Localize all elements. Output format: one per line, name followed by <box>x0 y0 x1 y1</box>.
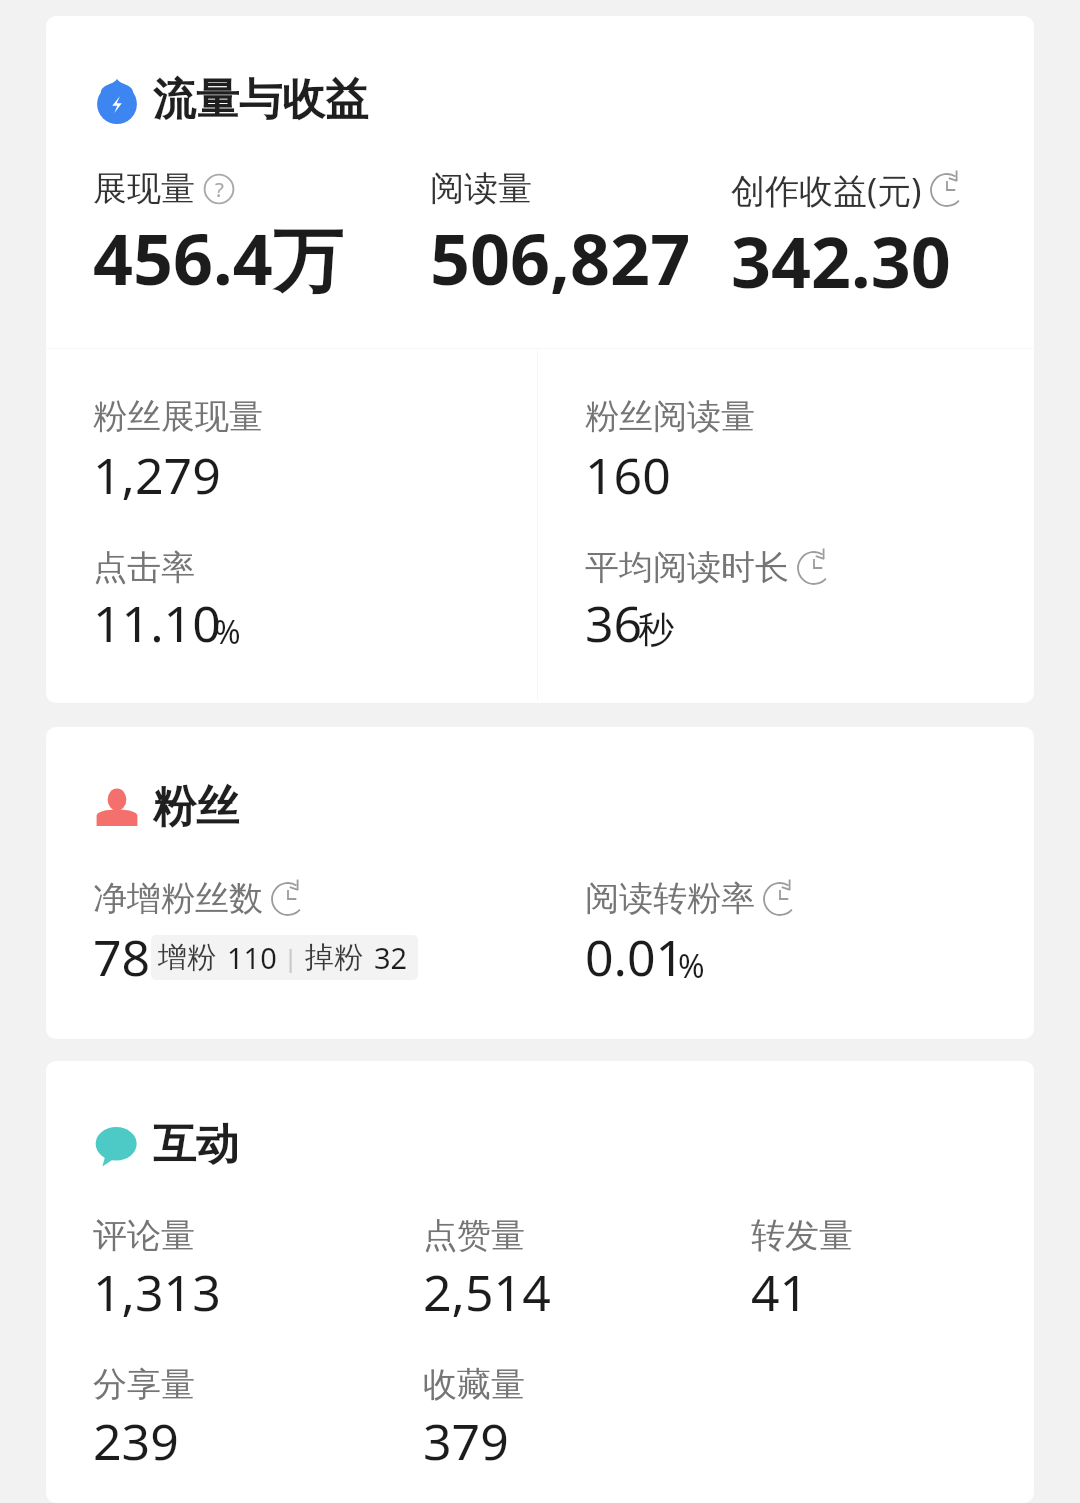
staticText: 增粉 <box>158 939 216 976</box>
staticText: 160 <box>585 441 671 509</box>
staticText: 阅读转粉率 <box>585 877 755 920</box>
staticText: 11.10 <box>93 589 221 657</box>
staticText: 掉粉 <box>305 939 363 976</box>
other: Updated periodically <box>797 551 831 585</box>
staticText: % <box>214 610 241 654</box>
staticText: 粉丝阅读量 <box>585 395 755 438</box>
staticText: 互动 <box>153 1118 239 1172</box>
staticText: 粉丝展现量 <box>93 395 263 438</box>
staticText: 239 <box>93 1407 179 1475</box>
staticText: 粉丝 <box>153 780 239 834</box>
staticText: 转发量 <box>751 1214 853 1257</box>
staticText: 0.01 <box>585 923 685 991</box>
staticText: ? <box>215 175 224 203</box>
staticText: 评论量 <box>93 1214 195 1257</box>
other: Updated periodically <box>271 882 305 916</box>
staticText: 32 <box>374 938 408 977</box>
staticText: 净增粉丝数 <box>93 877 263 920</box>
other: Updated periodically <box>930 173 964 207</box>
other: Help <box>203 173 235 205</box>
staticText: % <box>678 944 705 988</box>
staticText: 流量与收益 <box>153 73 368 127</box>
staticText: 阅读量 <box>430 167 532 210</box>
button[interactable]: 流量与收益 <box>46 16 1034 703</box>
staticText: | <box>284 941 298 974</box>
button[interactable]: 互动 <box>46 1061 1034 1503</box>
staticText: 收藏量 <box>423 1363 525 1406</box>
staticText: 41 <box>751 1258 809 1326</box>
button[interactable]: 粉丝 <box>46 727 1034 1039</box>
staticText: 点击率 <box>93 546 195 589</box>
staticText: 2,514 <box>423 1258 551 1326</box>
staticText: 创作收益(元) <box>731 167 922 213</box>
staticText: 36 <box>585 589 643 657</box>
staticText: 456.4万 <box>93 210 343 306</box>
staticText: 1,313 <box>93 1258 221 1326</box>
staticText: 平均阅读时长 <box>585 546 789 589</box>
staticText: 379 <box>423 1407 509 1475</box>
staticText: 展现量 <box>93 167 195 210</box>
other: Updated periodically <box>763 882 797 916</box>
staticText: 110 <box>227 938 277 977</box>
staticText: 秒 <box>638 607 674 652</box>
staticText: 506,827 <box>430 210 691 305</box>
staticText: 1,279 <box>93 441 221 509</box>
staticText: 分享量 <box>93 1363 195 1406</box>
staticText: 342.30 <box>731 213 951 308</box>
staticText: 点赞量 <box>423 1214 525 1257</box>
staticText: 78 <box>93 923 151 991</box>
